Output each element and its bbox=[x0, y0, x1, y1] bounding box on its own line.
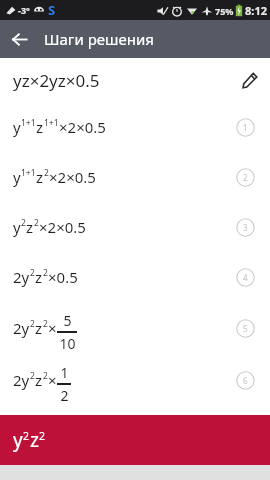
staticText: 2y bbox=[13, 370, 30, 390]
staticText: 2 bbox=[60, 386, 69, 405]
button[interactable]: 2y bbox=[0, 354, 270, 406]
staticText: z bbox=[35, 370, 43, 390]
staticText: -3° bbox=[18, 4, 30, 16]
staticText: 1+1 bbox=[21, 117, 36, 129]
staticText: 2 bbox=[34, 217, 39, 229]
staticText: z bbox=[35, 267, 43, 287]
staticText: 1+1 bbox=[44, 117, 59, 129]
staticText: × bbox=[48, 318, 57, 338]
staticText: 2 bbox=[43, 370, 48, 382]
button[interactable]: 4 bbox=[236, 268, 255, 287]
button[interactable]: 6 bbox=[236, 371, 255, 390]
staticText: 2 bbox=[21, 217, 26, 229]
staticText: 2 bbox=[30, 370, 35, 382]
staticText: 2y bbox=[13, 267, 30, 287]
staticText: y bbox=[13, 217, 21, 237]
button[interactable]: yz×2yz×0.5 bbox=[0, 58, 270, 102]
staticText: yz×2yz×0.5 bbox=[13, 69, 100, 92]
staticText: 2 bbox=[243, 172, 248, 183]
staticText: z bbox=[30, 427, 39, 453]
button[interactable]: y bbox=[0, 202, 270, 252]
staticText: 75% bbox=[215, 5, 234, 17]
staticText: 2y bbox=[13, 318, 30, 338]
staticText: 1+1 bbox=[21, 167, 36, 179]
staticText: 8:12 bbox=[245, 3, 267, 18]
button[interactable]: 2 bbox=[236, 168, 255, 187]
button[interactable]: Edit expression bbox=[236, 67, 262, 93]
staticText: z bbox=[36, 117, 44, 137]
button[interactable]: Back bbox=[0, 20, 38, 58]
staticText: 2 bbox=[30, 318, 35, 330]
button[interactable]: y bbox=[0, 415, 270, 465]
staticText: 2 bbox=[39, 429, 46, 443]
staticText: 3 bbox=[243, 222, 248, 233]
staticText: 6 bbox=[243, 375, 248, 386]
staticText: ×2×0.5 bbox=[59, 117, 106, 137]
staticText: 1 bbox=[243, 122, 248, 133]
staticText: 2 bbox=[43, 267, 48, 279]
staticText: 1 bbox=[60, 363, 69, 382]
staticText: S bbox=[48, 1, 56, 19]
button[interactable]: 5 bbox=[236, 319, 255, 338]
button[interactable]: y bbox=[0, 102, 270, 152]
staticText: y bbox=[13, 167, 21, 187]
staticText: z bbox=[26, 217, 34, 237]
staticText: ×2×0.5 bbox=[39, 217, 86, 237]
staticText: 2 bbox=[23, 429, 30, 443]
staticText: 5 bbox=[63, 311, 72, 330]
staticText: 2 bbox=[30, 267, 35, 279]
staticText: z bbox=[36, 167, 44, 187]
staticText: × bbox=[48, 370, 57, 390]
staticText: 5 bbox=[243, 323, 248, 334]
staticText: 10 bbox=[59, 334, 76, 353]
staticText: y bbox=[13, 117, 21, 137]
staticText: Шаги решения bbox=[44, 29, 154, 49]
staticText: ×2×0.5 bbox=[49, 167, 96, 187]
staticText: 4 bbox=[243, 272, 248, 283]
button[interactable]: y bbox=[0, 152, 270, 202]
button[interactable]: 3 bbox=[236, 218, 255, 237]
staticText: 2 bbox=[44, 167, 49, 179]
staticText: 2 bbox=[43, 318, 48, 330]
button[interactable]: 1 bbox=[236, 118, 255, 137]
button[interactable]: 2y bbox=[0, 252, 270, 302]
staticText: ×0.5 bbox=[48, 267, 78, 287]
button[interactable]: 2y bbox=[0, 302, 270, 354]
staticText: y bbox=[13, 427, 23, 453]
staticText: z bbox=[35, 318, 43, 338]
